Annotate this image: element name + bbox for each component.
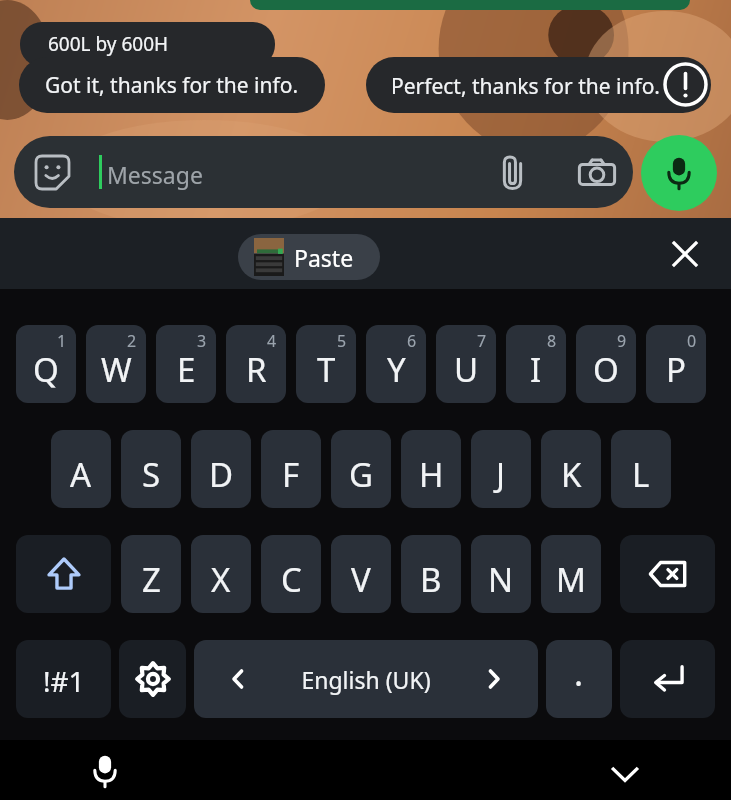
staticText: N bbox=[488, 557, 514, 602]
staticText: T bbox=[317, 347, 336, 392]
button[interactable]: R bbox=[226, 325, 286, 403]
staticText: 2 bbox=[127, 330, 137, 352]
button[interactable]: N bbox=[471, 535, 531, 613]
button[interactable]: Message not sent bbox=[663, 62, 708, 107]
staticText: X bbox=[211, 557, 231, 602]
button[interactable]: Y bbox=[366, 325, 426, 403]
button[interactable]: 600L by 600H bbox=[20, 22, 275, 67]
button[interactable]: Choose sticker bbox=[34, 154, 71, 191]
staticText: R bbox=[246, 347, 267, 392]
button[interactable]: Q bbox=[16, 325, 76, 403]
button[interactable]: B bbox=[401, 535, 461, 613]
button[interactable]: A bbox=[51, 430, 111, 508]
button[interactable]: L bbox=[611, 430, 671, 508]
button[interactable]: !#1 bbox=[16, 640, 111, 718]
button[interactable]: O bbox=[576, 325, 636, 403]
button[interactable]: Hide keyboard bbox=[600, 748, 650, 798]
staticText: 9 bbox=[617, 330, 627, 352]
staticText: 3 bbox=[197, 330, 207, 352]
button[interactable]: H bbox=[401, 430, 461, 508]
staticText: D bbox=[209, 452, 234, 497]
staticText: V bbox=[351, 557, 371, 602]
staticText: Paste bbox=[294, 242, 354, 273]
button[interactable]: X bbox=[191, 535, 251, 613]
staticText: H bbox=[419, 452, 444, 497]
staticText: E bbox=[177, 347, 196, 392]
staticText: P bbox=[666, 347, 686, 392]
button[interactable]: English (UK) bbox=[194, 640, 538, 718]
staticText: U bbox=[454, 347, 479, 392]
button[interactable]: U bbox=[436, 325, 496, 403]
staticText: English (UK) bbox=[301, 664, 431, 695]
staticText: K bbox=[561, 452, 582, 497]
staticText: 1 bbox=[57, 330, 67, 352]
button[interactable]: I bbox=[506, 325, 566, 403]
button[interactable]: Record voice message bbox=[641, 135, 717, 211]
staticText: S bbox=[142, 452, 161, 497]
staticText: Message bbox=[107, 159, 203, 190]
button[interactable]: J bbox=[471, 430, 531, 508]
staticText: Q bbox=[33, 347, 59, 392]
button[interactable]: Got it, thanks for the info. bbox=[19, 57, 325, 113]
button[interactable]: M bbox=[541, 535, 601, 613]
staticText: Z bbox=[142, 557, 161, 602]
button[interactable]: Take photo bbox=[577, 154, 617, 194]
button[interactable]: Backspace bbox=[620, 535, 715, 613]
button[interactable]: Shift bbox=[16, 535, 111, 613]
staticText: I bbox=[530, 347, 542, 392]
button[interactable]: Close suggestions bbox=[662, 231, 708, 277]
button[interactable]: D bbox=[191, 430, 251, 508]
button[interactable]: Enter bbox=[620, 640, 715, 718]
staticText: C bbox=[281, 557, 302, 602]
staticText: Y bbox=[387, 347, 406, 392]
staticText: L bbox=[632, 452, 650, 497]
button[interactable]: V bbox=[331, 535, 391, 613]
button[interactable]: W bbox=[86, 325, 146, 403]
button[interactable]: . bbox=[546, 640, 612, 718]
button[interactable]: T bbox=[296, 325, 356, 403]
staticText: 5 bbox=[337, 330, 347, 352]
staticText: F bbox=[282, 452, 300, 497]
button[interactable]: Perfect, thanks for the info. bbox=[366, 57, 711, 113]
button[interactable]: Choose sticker bbox=[14, 136, 633, 208]
button[interactable]: Keyboard settings bbox=[119, 640, 186, 718]
button[interactable]: F bbox=[261, 430, 321, 508]
staticText: W bbox=[101, 347, 132, 392]
staticText: 600L by 600H bbox=[48, 31, 169, 57]
button[interactable]: C bbox=[261, 535, 321, 613]
staticText: A bbox=[70, 452, 92, 497]
button[interactable]: Voice input bbox=[82, 748, 128, 794]
staticText: . bbox=[574, 650, 584, 696]
button[interactable]: S bbox=[121, 430, 181, 508]
button[interactable]: E bbox=[156, 325, 216, 403]
staticText: 0 bbox=[687, 330, 697, 352]
button[interactable]: Paste bbox=[238, 234, 380, 280]
staticText: M bbox=[556, 557, 586, 602]
staticText: Got it, thanks for the info. bbox=[45, 71, 299, 100]
staticText: J bbox=[496, 452, 506, 497]
button[interactable]: Attach file bbox=[494, 154, 531, 191]
staticText: O bbox=[593, 347, 619, 392]
button[interactable]: Z bbox=[121, 535, 181, 613]
staticText: B bbox=[420, 557, 442, 602]
button[interactable]: K bbox=[541, 430, 601, 508]
button[interactable]: P bbox=[646, 325, 706, 403]
staticText: 4 bbox=[267, 330, 277, 352]
staticText: 6 bbox=[407, 330, 417, 352]
staticText: !#1 bbox=[43, 662, 85, 700]
staticText: G bbox=[349, 452, 374, 497]
staticText: 8 bbox=[547, 330, 557, 352]
staticText: Perfect, thanks for the info. bbox=[391, 72, 660, 101]
staticText: 7 bbox=[477, 330, 487, 352]
button[interactable]: G bbox=[331, 430, 391, 508]
